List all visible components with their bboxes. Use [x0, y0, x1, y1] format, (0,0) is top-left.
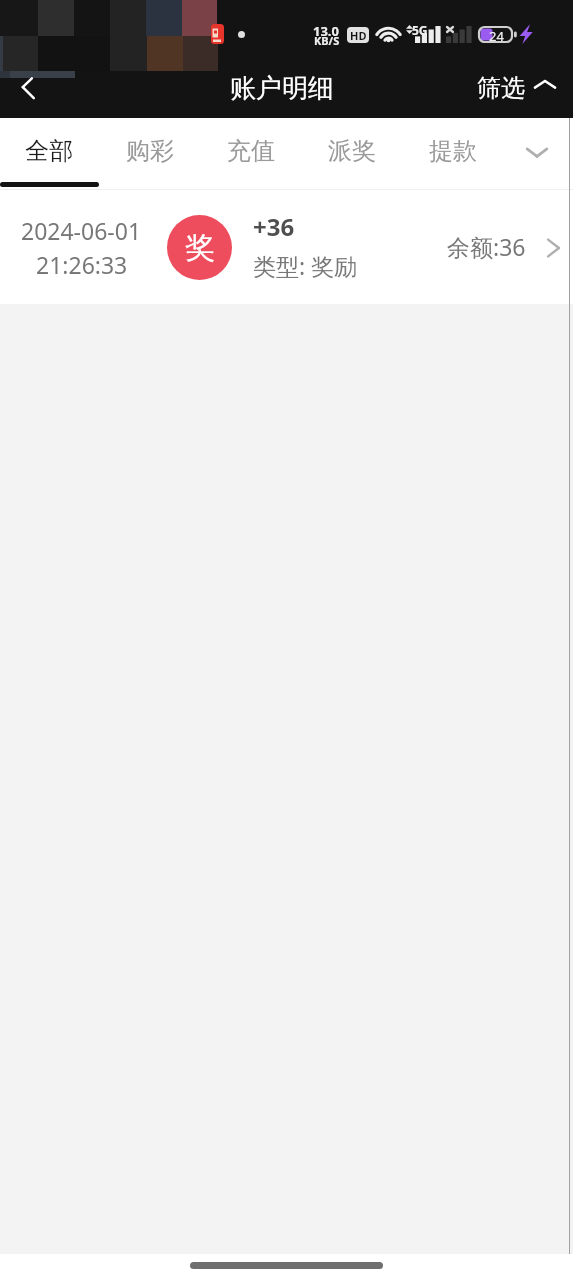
staticText: HD — [350, 28, 367, 43]
button[interactable]: More tabs — [519, 134, 555, 170]
staticText: 5G — [412, 22, 428, 38]
staticText: 全部 — [25, 136, 73, 166]
staticText: 充值 — [227, 136, 275, 166]
button[interactable]: 全部 — [0, 118, 99, 189]
staticText: 筛选 — [477, 73, 525, 103]
button[interactable]: 提款 — [402, 118, 503, 189]
staticText: KB/S — [314, 33, 340, 48]
button[interactable]: 购彩 — [99, 118, 200, 189]
button[interactable]: 充值 — [200, 118, 301, 189]
staticText: 提款 — [429, 136, 477, 166]
button[interactable]: Back — [0, 59, 58, 117]
staticText: +36 — [253, 210, 295, 243]
staticText: 奖 — [185, 229, 215, 267]
staticText: 24 — [489, 27, 504, 45]
staticText: 账户明细 — [230, 72, 334, 105]
staticText: 类型: 奖励 — [253, 250, 358, 281]
staticText: 余额:36 — [447, 231, 526, 262]
button[interactable]: 派奖 — [301, 118, 402, 189]
staticText: 21:26:33 — [36, 249, 128, 280]
staticText: 2024-06-01 — [21, 215, 142, 246]
staticText: 购彩 — [126, 136, 174, 166]
staticText: 派奖 — [328, 136, 376, 166]
button[interactable]: 筛选 — [477, 73, 556, 103]
button[interactable]: 2024-06-01 — [0, 190, 573, 304]
staticText: 13.0 — [313, 22, 339, 40]
